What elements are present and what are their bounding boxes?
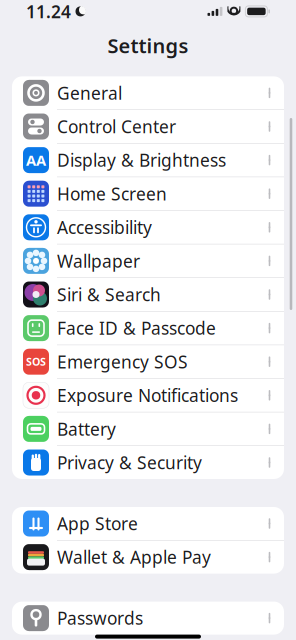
button[interactable]: Face ID & Passcode <box>12 311 284 345</box>
staticText: App Store <box>57 512 138 535</box>
staticText: Face ID & Passcode <box>57 317 216 340</box>
staticText: AA <box>26 150 46 170</box>
button[interactable]: Home Screen <box>12 177 284 210</box>
staticText: Exposure Notifications <box>57 384 238 407</box>
button[interactable]: Passwords <box>12 602 284 635</box>
staticText: Siri & Search <box>57 283 161 306</box>
button[interactable]: Accessibility <box>12 210 284 244</box>
staticText: Wallpaper <box>57 249 140 272</box>
button[interactable]: General <box>12 76 284 109</box>
button[interactable]: Wallet & Apple Pay <box>12 540 284 574</box>
staticText: Home Screen <box>57 182 167 205</box>
staticText: Emergency SOS <box>57 350 188 373</box>
staticText: 11.24 <box>26 0 71 23</box>
button[interactable]: Wallpaper <box>12 244 284 277</box>
staticText: Settings <box>107 32 188 59</box>
staticText: Display & Brightness <box>57 149 226 172</box>
staticText: Passwords <box>57 607 143 630</box>
button[interactable]: App Store <box>12 507 284 540</box>
button[interactable]: Exposure Notifications <box>12 378 284 412</box>
button[interactable]: Siri & Search <box>12 277 284 311</box>
button[interactable]: Privacy & Security <box>12 445 284 479</box>
button[interactable]: AA <box>12 143 284 177</box>
staticText: Privacy & Security <box>57 451 202 474</box>
button[interactable]: SOS <box>12 345 284 378</box>
staticText: Control Center <box>57 115 176 138</box>
button[interactable]: Control Center <box>12 109 284 143</box>
staticText: Battery <box>57 417 116 440</box>
button[interactable]: Battery <box>12 412 284 445</box>
staticText: General <box>57 81 122 104</box>
staticText: Wallet & Apple Pay <box>57 546 211 569</box>
staticText: SOS <box>26 355 46 369</box>
staticText: Accessibility <box>57 216 152 239</box>
